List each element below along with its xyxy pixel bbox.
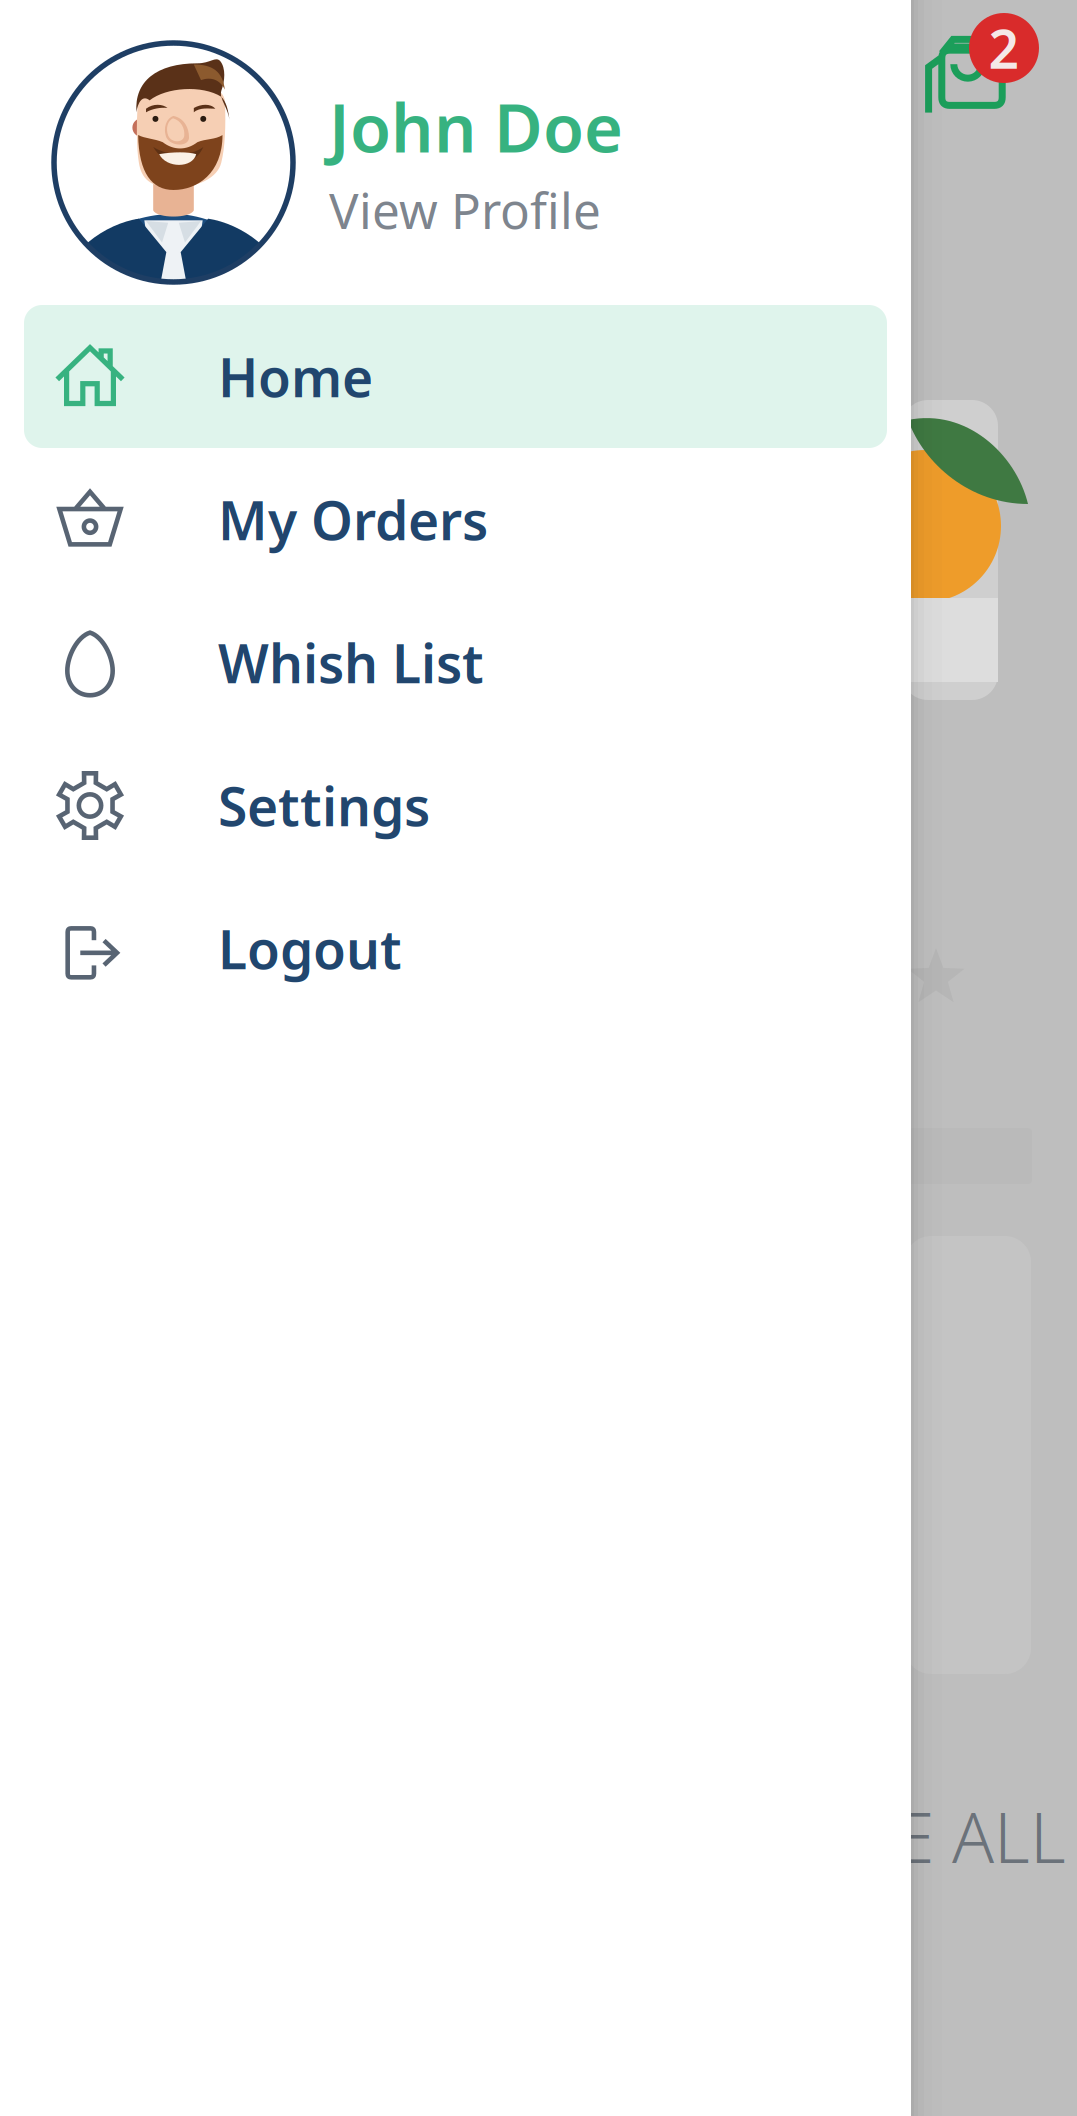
- staticText: Whish List: [218, 627, 484, 698]
- button[interactable]: Home: [24, 305, 887, 448]
- button[interactable]: Cart, 2 items: [908, 3, 1022, 103]
- button[interactable]: John Doe: [0, 0, 911, 305]
- staticText: E ALL: [896, 1790, 1066, 1882]
- button[interactable]: Logout: [24, 877, 887, 1020]
- staticText: My Orders: [218, 484, 488, 555]
- staticText: View Profile: [329, 177, 601, 242]
- button[interactable]: Settings: [24, 734, 887, 877]
- staticText: John Doe: [329, 82, 623, 171]
- staticText: 2: [988, 13, 1019, 83]
- staticText: Home: [218, 341, 373, 412]
- button[interactable]: Whish List: [24, 591, 887, 734]
- staticText: Logout: [218, 913, 402, 984]
- button[interactable]: My Orders: [24, 448, 887, 591]
- staticText: Settings: [218, 770, 430, 841]
